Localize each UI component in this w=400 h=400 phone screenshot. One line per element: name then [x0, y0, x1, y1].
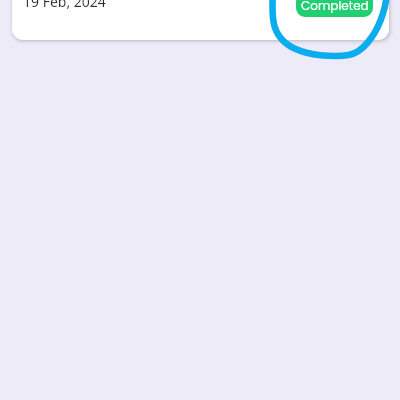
staticText: 19 Feb, 2024	[23, 0, 106, 11]
staticText: Completed	[301, 0, 369, 14]
other: Annotation highlight	[0, 0, 400, 400]
button[interactable]: 19 Feb, 2024	[12, 0, 389, 40]
button[interactable]: Completed	[296, 0, 373, 17]
